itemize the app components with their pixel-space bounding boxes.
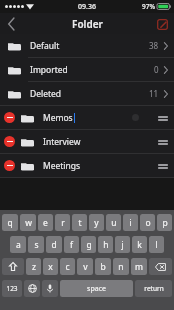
staticText: s <box>34 239 39 251</box>
staticText: z <box>32 261 36 273</box>
button[interactable]: f <box>64 236 79 253</box>
button[interactable]: o <box>140 214 155 231</box>
button[interactable]: Delete Memos <box>0 106 174 129</box>
staticText: k <box>137 239 142 251</box>
staticText: v <box>83 261 88 273</box>
button[interactable]: Reorder Memos <box>155 109 171 127</box>
staticText: 0 <box>154 64 159 75</box>
button[interactable]: b <box>95 258 111 275</box>
button[interactable]: u <box>106 214 121 231</box>
staticText: space <box>87 284 106 294</box>
staticText: j <box>121 239 124 251</box>
staticText: 97% <box>142 2 155 11</box>
button[interactable]: e <box>38 214 53 231</box>
button[interactable]: Delete Meetings <box>0 154 174 177</box>
staticText: p <box>162 217 168 229</box>
button[interactable]: Reorder Meetings <box>155 157 171 175</box>
staticText: b <box>100 261 106 273</box>
staticText: f <box>70 239 73 251</box>
staticText: Default <box>30 40 60 52</box>
staticText: 09.36 <box>78 2 96 12</box>
button[interactable]: n <box>113 258 129 275</box>
button[interactable]: Voice input <box>42 280 58 297</box>
button[interactable]: z <box>26 258 41 275</box>
staticText: return <box>144 284 164 293</box>
button[interactable]: Default <box>0 34 174 57</box>
button[interactable]: q <box>2 214 18 231</box>
staticText: e <box>43 217 48 229</box>
button[interactable]: g <box>81 236 96 253</box>
staticText: 38 <box>149 40 159 51</box>
button[interactable]: Reorder Interview <box>155 133 171 151</box>
button[interactable]: Delete Interview <box>0 130 174 153</box>
button[interactable]: p <box>157 214 172 231</box>
button[interactable]: c <box>60 258 75 275</box>
staticText: a <box>16 239 21 251</box>
button[interactable]: Delete Interview <box>4 136 15 147</box>
staticText: c <box>65 261 70 273</box>
staticText: n <box>118 261 124 273</box>
button[interactable]: Imported <box>0 58 174 81</box>
button[interactable]: Delete Memos <box>4 112 15 123</box>
button[interactable]: Backspace <box>149 258 172 275</box>
button[interactable]: Back <box>0 13 22 34</box>
staticText: x <box>48 261 53 273</box>
button[interactable]: space <box>60 280 133 297</box>
staticText: w <box>25 217 32 229</box>
staticText: u <box>111 217 117 229</box>
button[interactable]: w <box>20 214 36 231</box>
button[interactable]: r <box>55 214 70 231</box>
staticText: Memos <box>43 112 73 124</box>
button[interactable]: y <box>89 214 104 231</box>
staticText: Meetings <box>43 160 81 172</box>
staticText: h <box>103 239 109 251</box>
button[interactable]: i <box>123 214 138 231</box>
staticText: Imported <box>30 64 68 76</box>
staticText: 11 <box>149 88 159 99</box>
staticText: i <box>129 217 132 229</box>
staticText: d <box>51 239 57 251</box>
staticText: l <box>155 239 158 251</box>
button[interactable]: v <box>77 258 93 275</box>
staticText: Interview <box>43 136 81 148</box>
button[interactable]: m <box>131 258 147 275</box>
button[interactable]: j <box>115 236 130 253</box>
button[interactable]: return <box>135 280 172 297</box>
button[interactable]: s <box>28 236 44 253</box>
button[interactable]: x <box>43 258 58 275</box>
button[interactable]: t <box>72 214 87 231</box>
button[interactable]: a <box>10 236 26 253</box>
button[interactable]: d <box>46 236 62 253</box>
staticText: m <box>135 261 143 273</box>
button[interactable]: Edit <box>154 16 170 32</box>
button[interactable]: Delete Meetings <box>4 160 15 171</box>
staticText: o <box>145 217 151 229</box>
button[interactable]: h <box>98 236 113 253</box>
button[interactable]: Shift <box>2 258 24 275</box>
button[interactable]: Deleted <box>0 82 174 105</box>
staticText: Folder <box>72 17 103 31</box>
staticText: r <box>61 217 65 229</box>
staticText: g <box>86 239 92 251</box>
staticText: Deleted <box>30 88 62 100</box>
staticText: y <box>94 217 99 229</box>
button[interactable]: k <box>132 236 147 253</box>
button[interactable]: l <box>149 236 164 253</box>
staticText: q <box>7 217 13 229</box>
staticText: 123 <box>6 284 18 293</box>
button[interactable]: Switch keyboard language <box>24 280 40 297</box>
staticText: t <box>78 217 82 229</box>
button[interactable]: 123 <box>2 280 22 297</box>
